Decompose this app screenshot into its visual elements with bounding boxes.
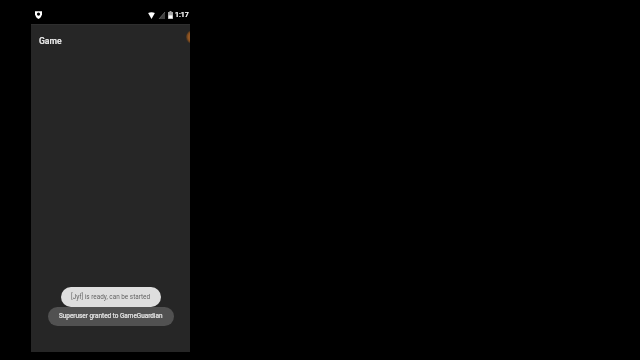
button[interactable]: Superuser granted to GameGuardian [59, 307, 163, 326]
button[interactable]: GameGuardian floating icon [186, 30, 190, 44]
staticText: Superuser granted to GameGuardian [59, 312, 163, 320]
staticText: 1:17 [175, 11, 189, 19]
other: VPN [35, 11, 42, 19]
button[interactable]: [Jyf] is ready, can be started [71, 287, 151, 307]
staticText: Game [39, 36, 62, 46]
staticText: [Jyf] is ready, can be started [71, 293, 151, 301]
